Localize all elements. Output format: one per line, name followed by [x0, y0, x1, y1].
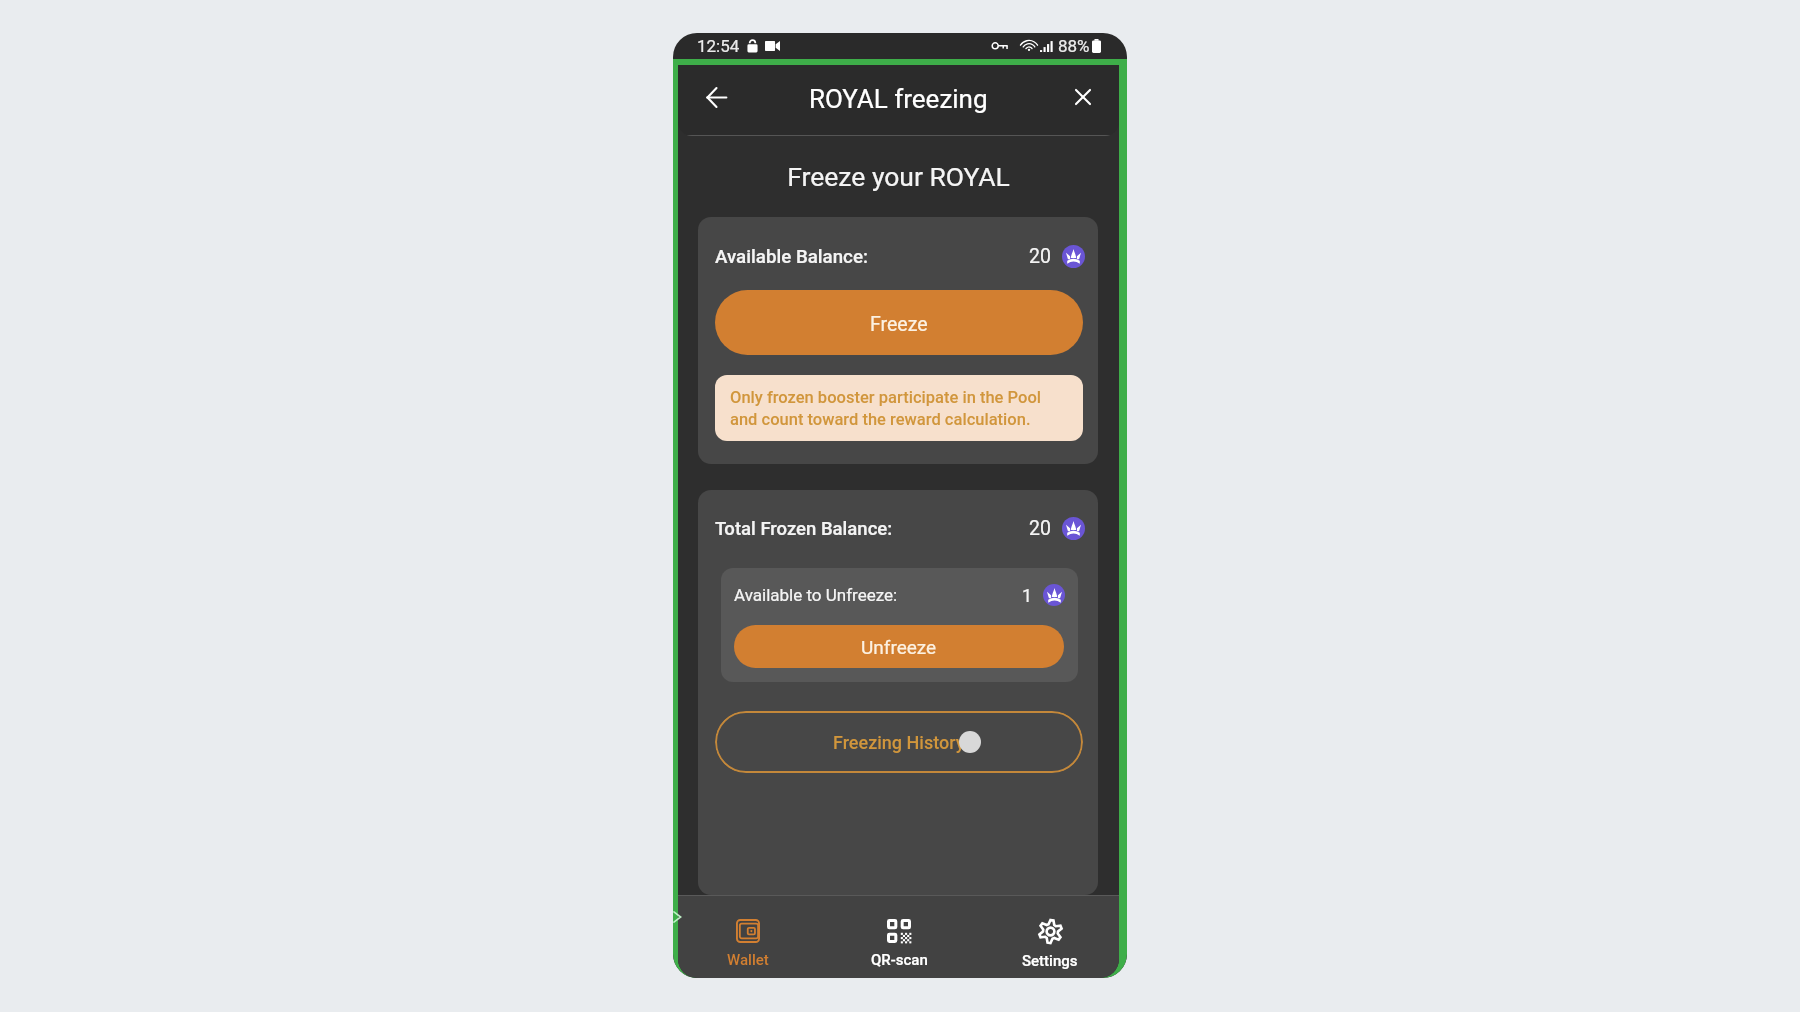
button[interactable]: Unfreeze — [734, 625, 1064, 668]
staticText: 12:54 — [697, 36, 740, 56]
button[interactable]: Freezing History — [715, 711, 1083, 773]
staticText: 88% — [1058, 36, 1090, 56]
staticText: Freeze your ROYAL — [678, 161, 1119, 192]
staticText: Total Frozen Balance: — [715, 518, 893, 540]
button[interactable]: Back — [696, 77, 736, 117]
staticText: 1 — [1022, 585, 1033, 606]
button[interactable]: QR-scan — [849, 895, 949, 978]
button[interactable]: Wallet — [698, 895, 798, 978]
staticText: 20 — [1029, 245, 1051, 268]
staticText: Freeze — [870, 313, 928, 336]
staticText: Unfreeze — [861, 636, 937, 658]
staticText: Available to Unfreeze: — [734, 585, 898, 605]
staticText: ROYAL freezing — [809, 84, 988, 114]
staticText: QR-scan — [871, 951, 928, 969]
button[interactable]: Close — [1063, 77, 1103, 117]
staticText: Wallet — [727, 951, 769, 969]
button[interactable]: Freeze — [715, 290, 1083, 355]
staticText: 20 — [1029, 517, 1051, 540]
button[interactable]: Settings — [1000, 895, 1100, 978]
staticText: Settings — [1022, 952, 1078, 970]
staticText: Available Balance: — [715, 246, 868, 268]
staticText: Only frozen booster participate in the P… — [730, 388, 1042, 429]
staticText: Freezing History — [833, 732, 965, 753]
